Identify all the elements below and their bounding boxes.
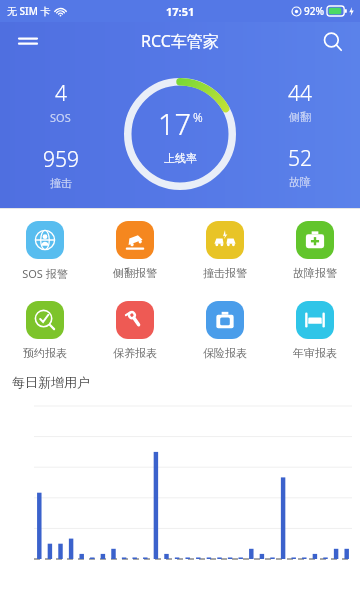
button[interactable]: Search [312, 22, 352, 60]
staticText: 17 [158, 104, 192, 143]
button[interactable]: Menu [8, 22, 48, 60]
button[interactable]: 撞击报警 [180, 219, 270, 282]
staticText: RCC车管家 [141, 30, 219, 52]
staticText: 保险报表 [203, 346, 247, 360]
staticText: 每日新增用户 [12, 374, 90, 390]
staticText: 4 [55, 79, 67, 108]
staticText: 预约报表 [23, 346, 67, 360]
staticText: SOS [50, 110, 71, 125]
staticText: 92% [304, 4, 324, 18]
staticText: 侧翻 [289, 110, 311, 124]
staticText: 17:51 [166, 4, 195, 19]
button[interactable]: 故障报警 [270, 219, 360, 282]
staticText: 故障报警 [293, 266, 337, 280]
button[interactable]: SOS 报警 [0, 219, 90, 283]
button[interactable]: 年审报表 [270, 299, 360, 362]
staticText: 无 SIM 卡 [7, 4, 51, 18]
staticText: 年审报表 [293, 346, 337, 360]
button[interactable]: 保养报表 [90, 299, 180, 362]
button[interactable]: 预约报表 [0, 299, 90, 362]
staticText: 侧翻报警 [113, 266, 157, 280]
staticText: 撞击 [50, 176, 72, 190]
staticText: 故障 [289, 175, 311, 189]
staticText: SOS 报警 [22, 266, 68, 281]
staticText: 44 [288, 79, 312, 108]
staticText: 52 [288, 144, 312, 173]
staticText: 959 [43, 145, 79, 174]
staticText: % [193, 109, 203, 125]
staticText: 上线率 [164, 151, 197, 165]
staticText: 撞击报警 [203, 266, 247, 280]
button[interactable]: 保险报表 [180, 299, 270, 362]
staticText: 保养报表 [113, 346, 157, 360]
button[interactable]: 侧翻报警 [90, 219, 180, 282]
